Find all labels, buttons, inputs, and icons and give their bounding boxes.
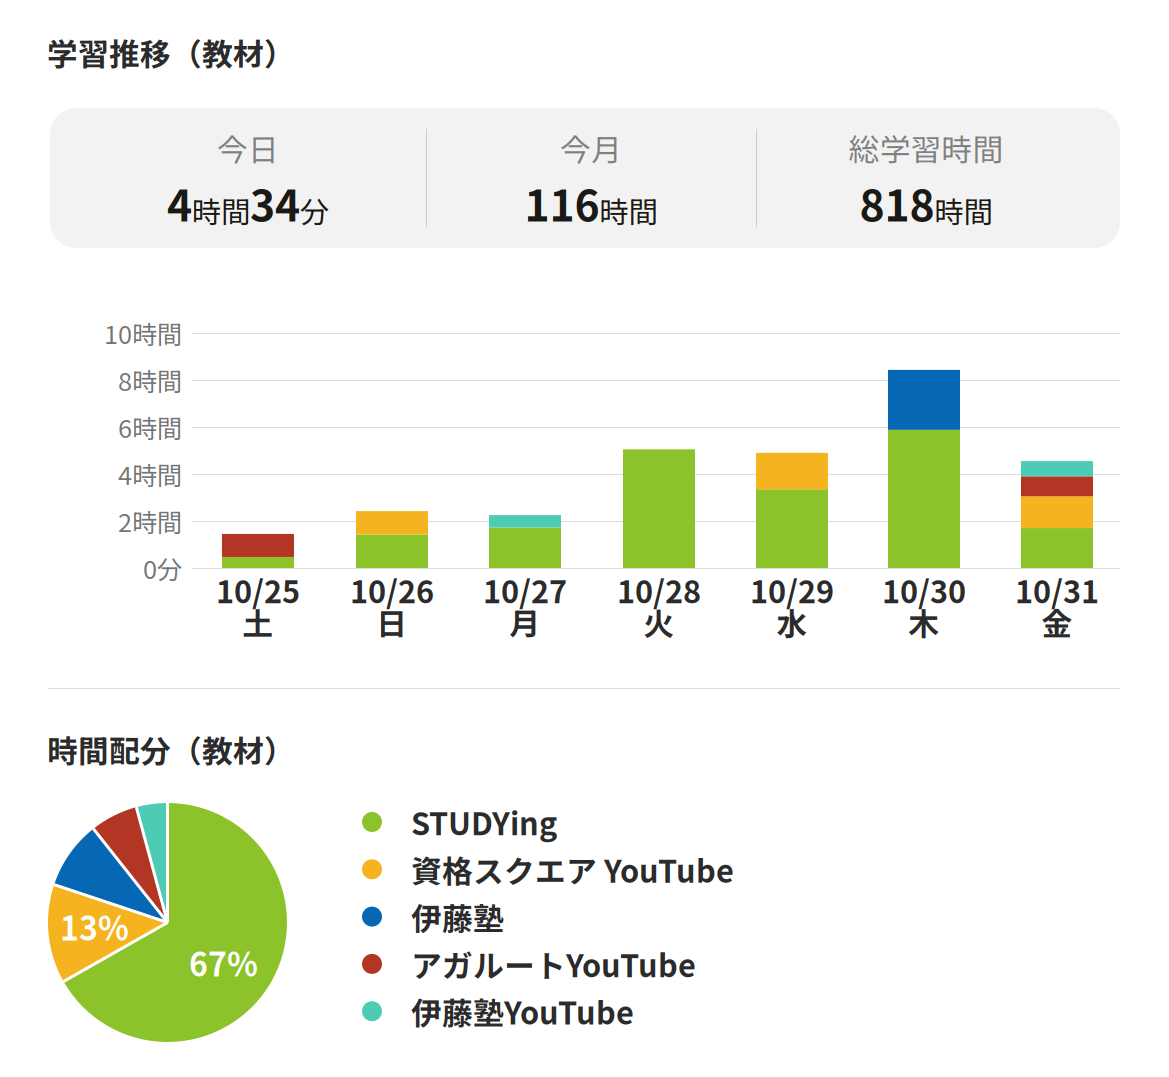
staticText: 木 <box>908 600 939 644</box>
staticText: 伊藤塾 <box>411 894 504 939</box>
staticText: 総学習時間 <box>848 126 1003 170</box>
staticText: 今月 <box>560 126 622 170</box>
staticText: 10/29 <box>750 568 834 612</box>
staticText: 資格スクエア YouTube <box>411 847 734 891</box>
staticText: 6時間 <box>118 409 182 445</box>
staticText: 月 <box>509 600 540 644</box>
button[interactable]: STUDYing <box>362 802 557 842</box>
staticText: 学習推移（教材） <box>47 30 295 74</box>
staticText: 金 <box>1041 600 1072 644</box>
staticText: 10/26 <box>350 568 434 612</box>
staticText: 10/30 <box>882 568 966 612</box>
staticText: 116時間 <box>524 173 657 233</box>
staticText: 時間配分（教材） <box>47 727 295 771</box>
staticText: 10/25 <box>216 568 300 612</box>
staticText: 0分 <box>143 550 182 586</box>
staticText: 818時間 <box>859 173 992 233</box>
staticText: 4時間34分 <box>167 173 329 233</box>
staticText: 今日 <box>217 126 279 170</box>
staticText: 日 <box>376 600 407 644</box>
staticText: 伊藤塾YouTube <box>411 989 634 1033</box>
staticText: 8時間 <box>118 362 182 398</box>
staticText: 13% <box>60 903 129 950</box>
staticText: 土 <box>242 600 273 644</box>
staticText: 67% <box>189 939 258 986</box>
staticText: 10/28 <box>617 568 701 612</box>
button[interactable]: 資格スクエア YouTube <box>362 849 734 889</box>
button[interactable]: 伊藤塾YouTube <box>362 991 634 1031</box>
button[interactable]: 伊藤塾 <box>362 897 504 937</box>
staticText: 10/31 <box>1015 568 1099 612</box>
staticText: 水 <box>776 600 807 644</box>
staticText: 4時間 <box>118 456 182 492</box>
button[interactable]: アガルートYouTube <box>362 944 696 984</box>
staticText: 10/27 <box>483 568 567 612</box>
staticText: 10時間 <box>104 315 182 351</box>
staticText: STUDYing <box>411 800 557 844</box>
staticText: アガルートYouTube <box>411 942 696 986</box>
staticText: 2時間 <box>118 503 182 539</box>
staticText: 火 <box>643 600 674 644</box>
